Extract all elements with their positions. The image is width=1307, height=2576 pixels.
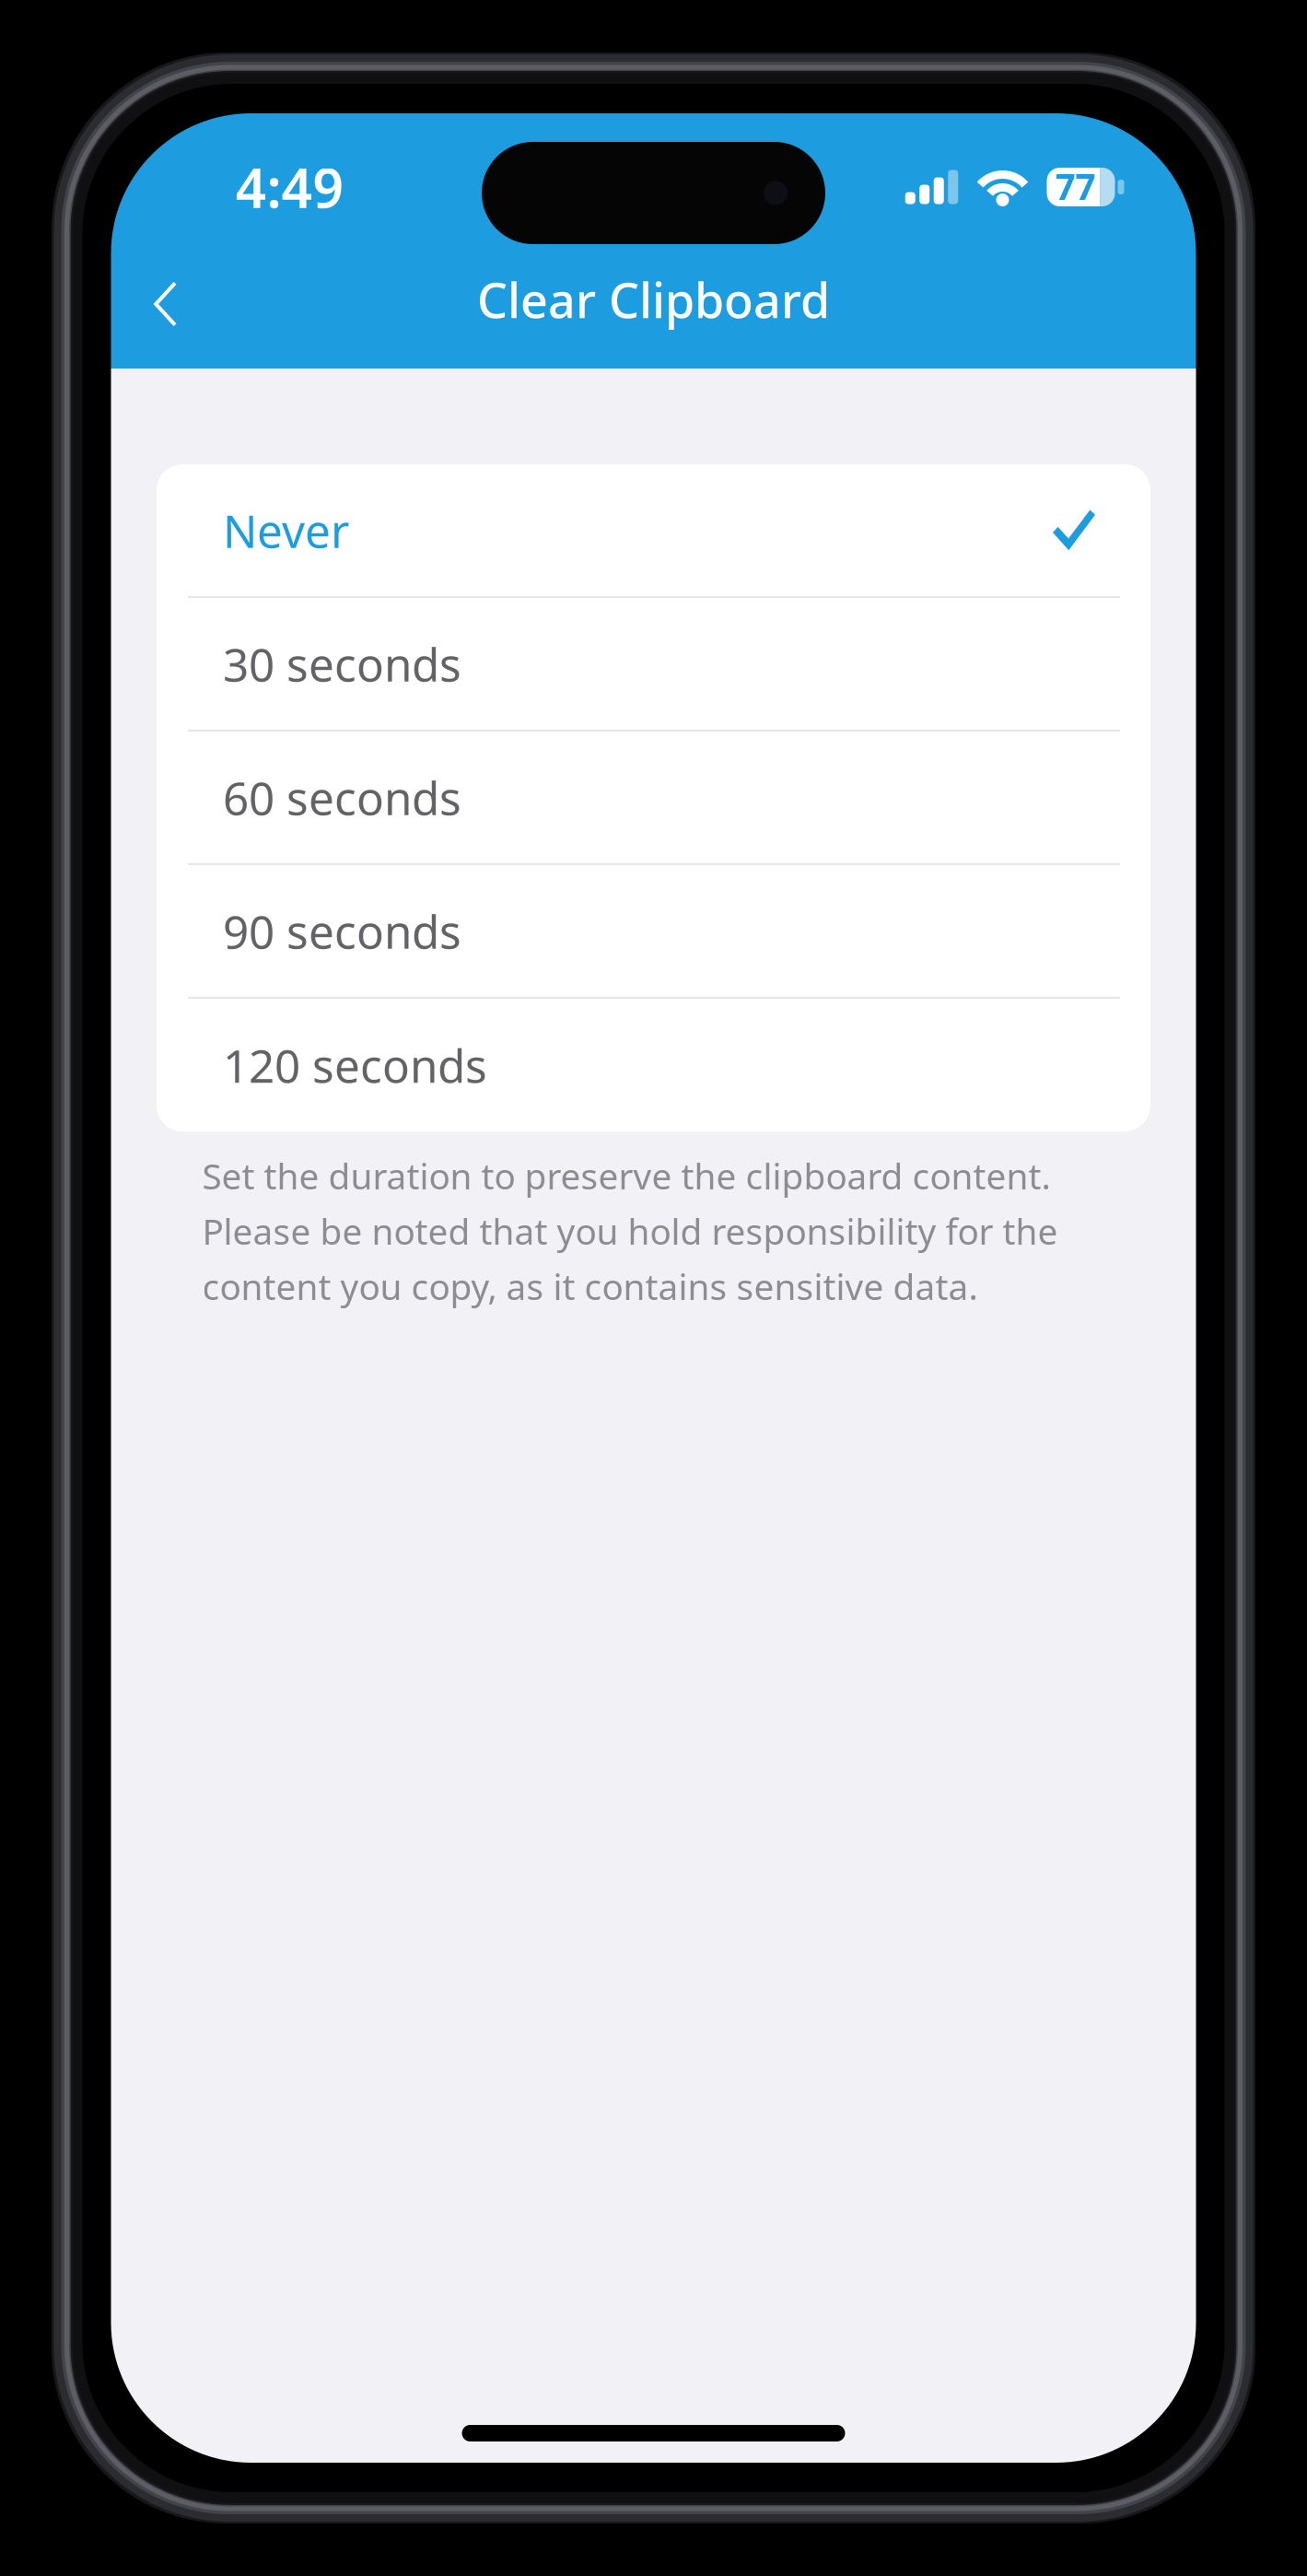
- staticText: 30 seconds: [223, 634, 461, 694]
- button[interactable]: 30 seconds: [157, 598, 1150, 732]
- staticText: 90 seconds: [223, 901, 461, 961]
- staticText: 77: [1055, 162, 1096, 210]
- button[interactable]: 60 seconds: [157, 732, 1150, 865]
- button[interactable]: 90 seconds: [157, 865, 1150, 999]
- button[interactable]: 120 seconds: [157, 999, 1150, 1131]
- staticText: Set the duration to preserve the clipboa…: [202, 1152, 1050, 1199]
- button[interactable]: Never: [157, 464, 1150, 598]
- button[interactable]: Back: [111, 250, 220, 358]
- staticText: Please be noted that you hold responsibi…: [202, 1207, 1058, 1254]
- staticText: 120 seconds: [223, 1035, 487, 1095]
- staticText: content you copy, as it contains sensiti…: [202, 1262, 978, 1310]
- staticText: 4:49: [235, 151, 344, 223]
- staticText: 60 seconds: [223, 767, 461, 828]
- staticText: Never: [223, 500, 349, 560]
- staticText: Clear Clipboard: [477, 268, 830, 331]
